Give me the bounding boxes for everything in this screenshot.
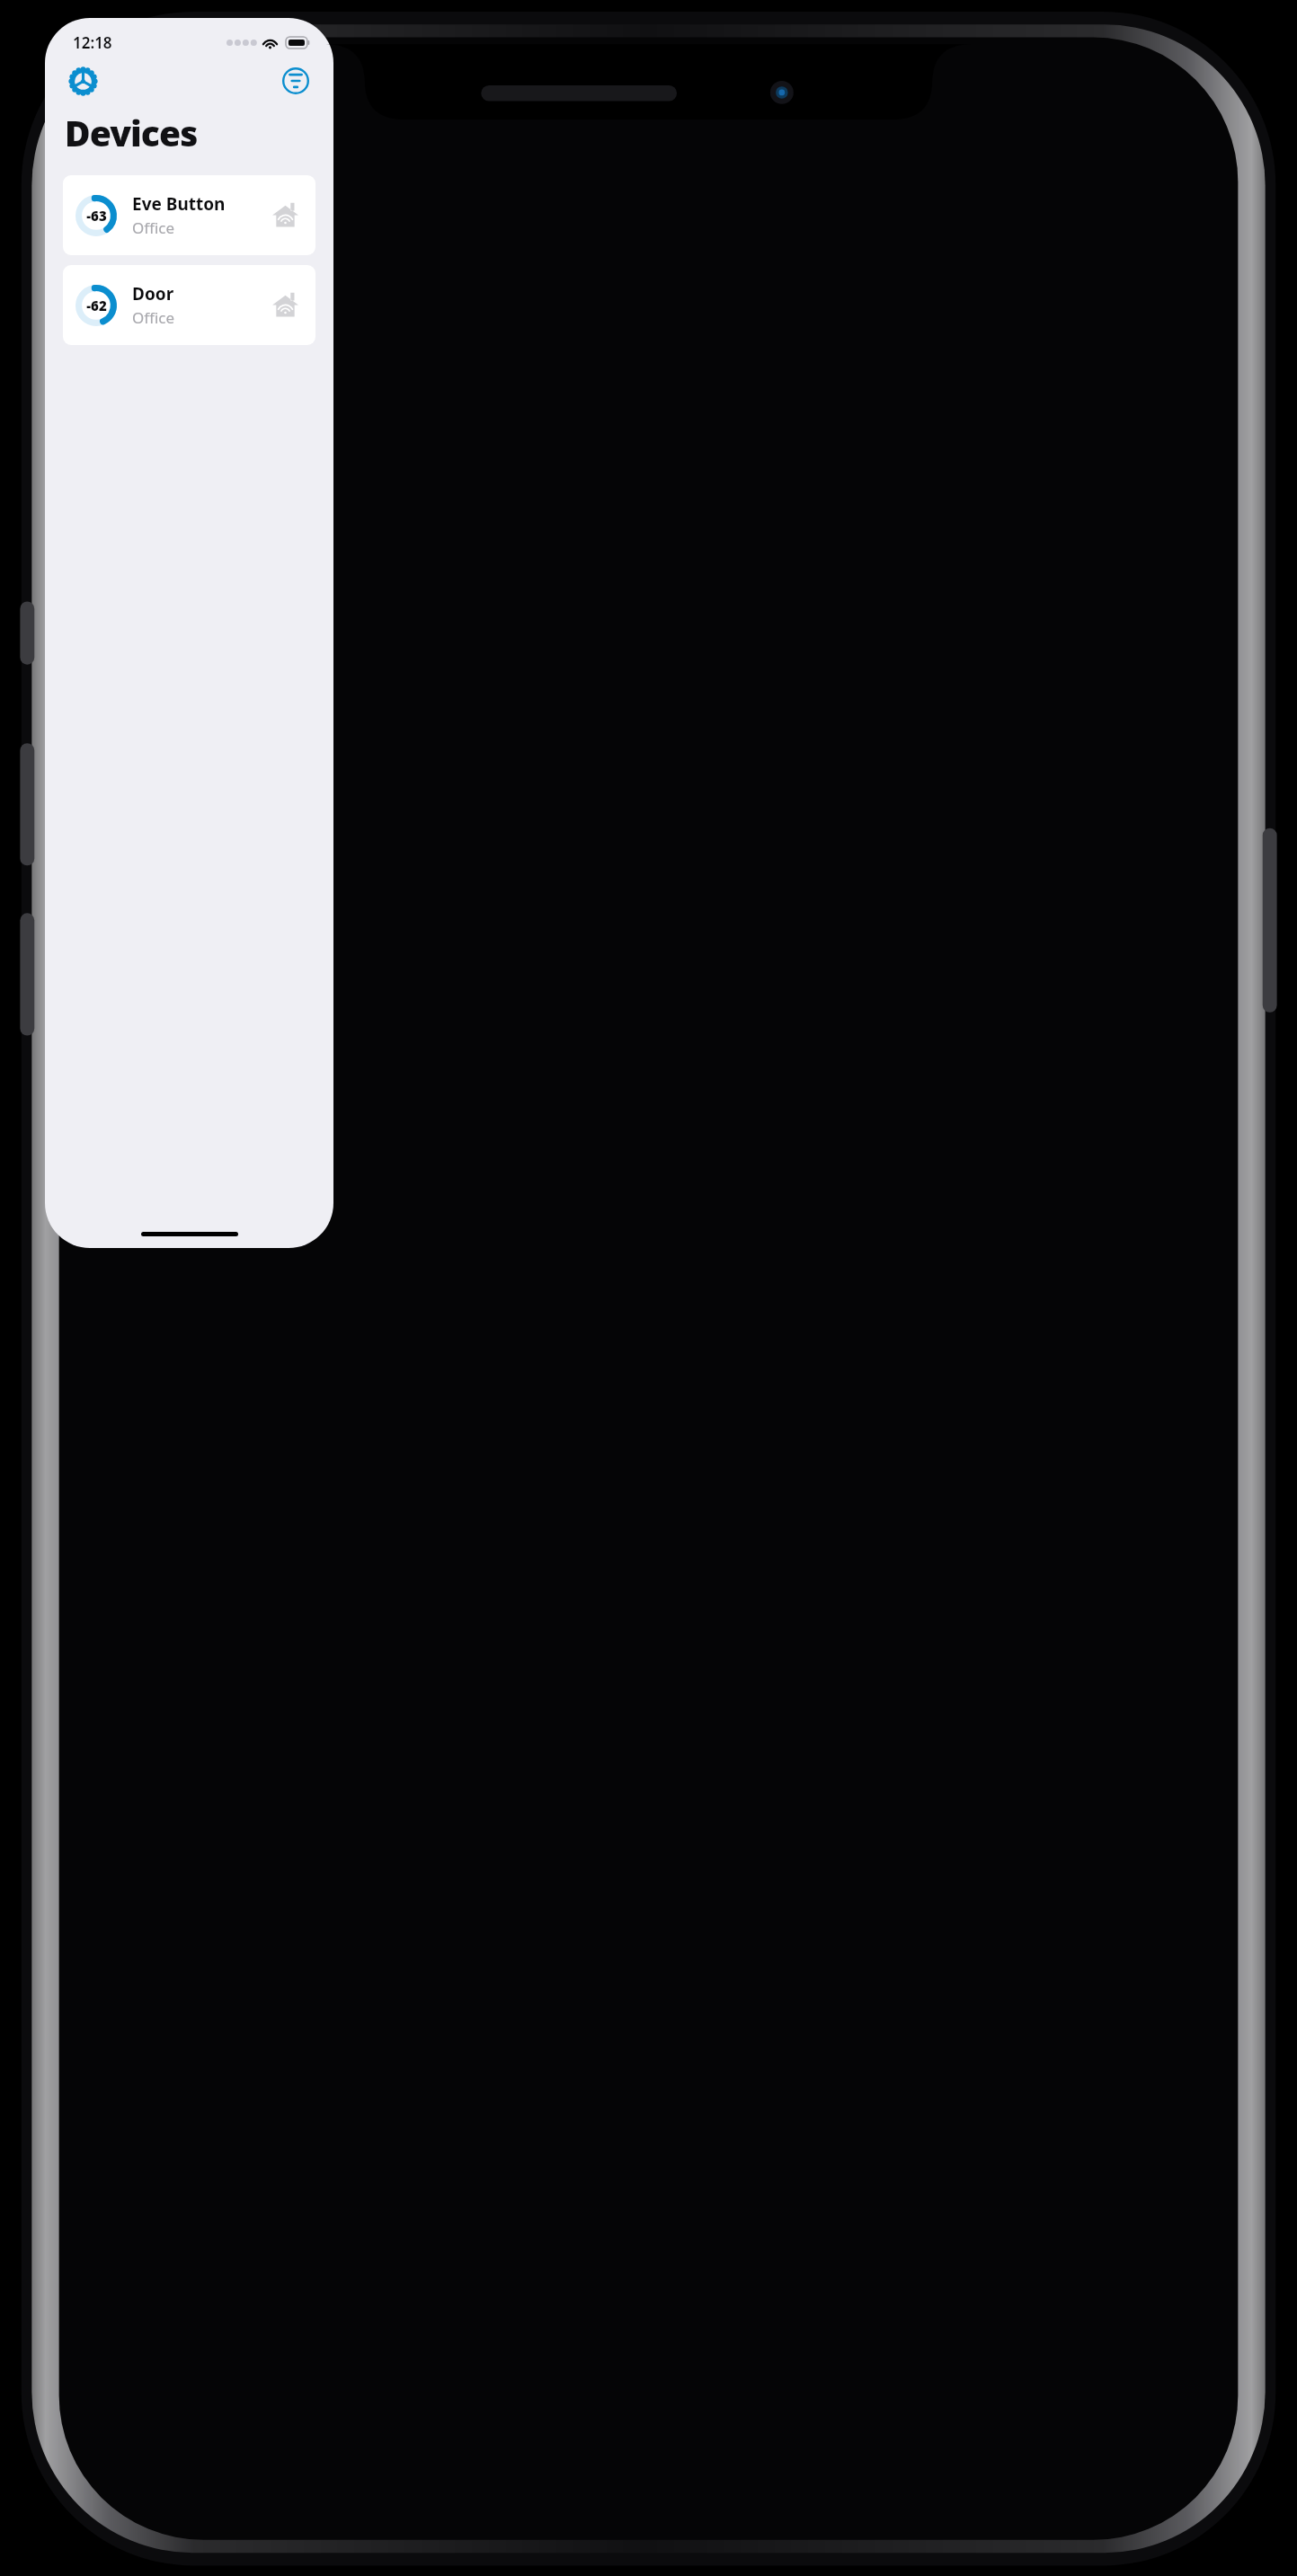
staticText: 12:18 (73, 32, 112, 53)
button[interactable]: -63 (63, 175, 315, 255)
button[interactable]: Settings (62, 60, 103, 102)
staticText: -62 (86, 297, 107, 314)
button[interactable]: Filter (275, 60, 316, 102)
staticText: Devices (65, 109, 198, 156)
staticText: Office (132, 307, 175, 328)
staticText: Office (132, 217, 175, 238)
staticText: -63 (86, 207, 107, 225)
staticText: Door (132, 282, 174, 305)
button[interactable]: -62 (63, 265, 315, 345)
staticText: Eve Button (132, 192, 226, 216)
